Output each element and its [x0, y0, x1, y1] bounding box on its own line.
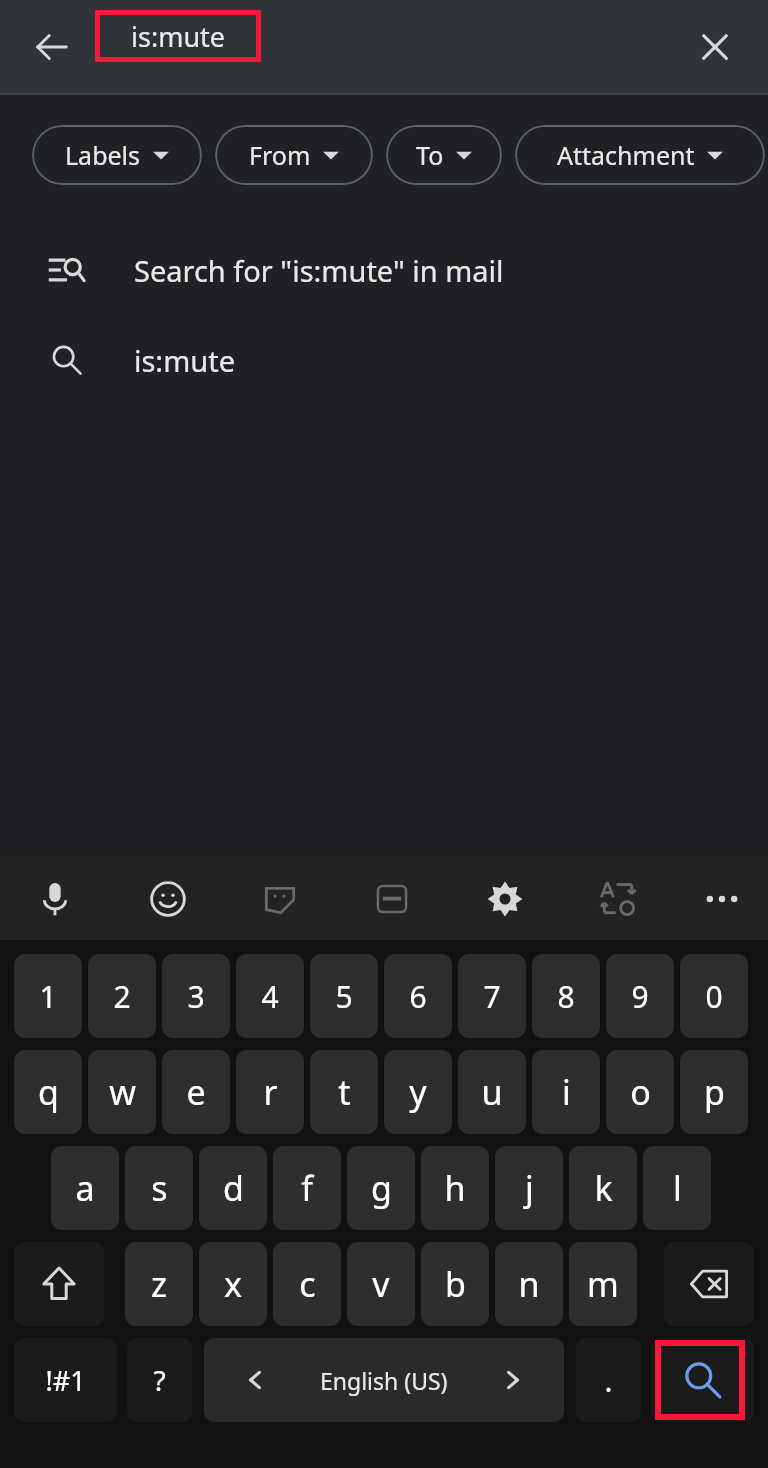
staticText: m	[587, 1261, 619, 1307]
staticText: e	[186, 1069, 206, 1115]
button[interactable]: Stickers	[244, 863, 316, 935]
button[interactable]: q	[14, 1050, 82, 1134]
staticText: z	[151, 1261, 167, 1307]
staticText: Attachment	[557, 138, 695, 172]
button[interactable]: More options	[686, 863, 758, 935]
staticText: u	[481, 1069, 503, 1115]
staticText: 1	[39, 976, 57, 1017]
button[interactable]: v	[347, 1242, 415, 1326]
staticText: q	[38, 1069, 59, 1115]
staticText: d	[223, 1165, 244, 1211]
button[interactable]: o	[606, 1050, 674, 1134]
button[interactable]: GIF	[356, 863, 428, 935]
button[interactable]: k	[569, 1146, 637, 1230]
button[interactable]: Clear search	[675, 7, 755, 87]
staticText: .	[604, 1360, 613, 1401]
staticText: c	[299, 1261, 316, 1307]
button[interactable]: Search	[651, 1338, 754, 1422]
button[interactable]: 0	[680, 954, 748, 1038]
button[interactable]: n	[495, 1242, 563, 1326]
button[interactable]: x	[199, 1242, 267, 1326]
button[interactable]: g	[347, 1146, 415, 1230]
button[interactable]: a	[51, 1146, 119, 1230]
button[interactable]: i	[532, 1050, 600, 1134]
button[interactable]: w	[88, 1050, 156, 1134]
button[interactable]: Attachment	[515, 125, 765, 185]
staticText: 7	[483, 976, 501, 1017]
staticText: 4	[261, 976, 279, 1017]
button[interactable]: e	[162, 1050, 230, 1134]
button[interactable]: To	[386, 125, 502, 185]
staticText: t	[338, 1069, 351, 1115]
staticText: h	[444, 1165, 466, 1211]
button[interactable]: Space, English (US)	[204, 1338, 564, 1422]
button[interactable]: .	[576, 1338, 641, 1422]
staticText: !#1	[45, 1362, 86, 1399]
staticText: n	[518, 1261, 540, 1307]
button[interactable]: l	[643, 1146, 711, 1230]
button[interactable]: Back	[12, 7, 92, 87]
staticText: r	[263, 1069, 278, 1115]
staticText: 5	[335, 976, 353, 1017]
staticText: 3	[187, 976, 205, 1017]
staticText: i	[562, 1069, 571, 1115]
staticText: From	[249, 138, 311, 172]
staticText: v	[372, 1261, 390, 1307]
button[interactable]: Shift	[14, 1242, 104, 1326]
button[interactable]: z	[125, 1242, 193, 1326]
button[interactable]: From	[215, 125, 373, 185]
staticText: ?	[153, 1361, 166, 1399]
staticText: y	[409, 1069, 427, 1115]
button[interactable]: j	[495, 1146, 563, 1230]
staticText: Labels	[65, 138, 141, 172]
button[interactable]: f	[273, 1146, 341, 1230]
button[interactable]: Translate	[582, 863, 654, 935]
button[interactable]: 9	[606, 954, 674, 1038]
staticText: a	[75, 1165, 95, 1211]
staticText: is:mute	[134, 341, 236, 380]
button[interactable]: !#1	[14, 1338, 117, 1422]
staticText: g	[371, 1165, 392, 1211]
button[interactable]: ?	[127, 1338, 192, 1422]
button[interactable]: Labels	[32, 125, 202, 185]
button[interactable]: 7	[458, 954, 526, 1038]
button[interactable]: c	[273, 1242, 341, 1326]
button[interactable]: b	[421, 1242, 489, 1326]
button[interactable]: 2	[88, 954, 156, 1038]
button[interactable]: Backspace	[664, 1242, 754, 1326]
button[interactable]: Voice input	[19, 863, 91, 935]
staticText: 6	[409, 976, 427, 1017]
button[interactable]: 5	[310, 954, 378, 1038]
staticText: w	[109, 1069, 136, 1115]
button[interactable]: 6	[384, 954, 452, 1038]
button[interactable]: t	[310, 1050, 378, 1134]
button[interactable]: Emoji	[132, 863, 204, 935]
button[interactable]: 1	[14, 954, 82, 1038]
button[interactable]: h	[421, 1146, 489, 1230]
staticText: l	[673, 1165, 682, 1211]
staticText: Search for "is:mute" in mail	[134, 251, 504, 290]
button[interactable]: Settings	[469, 863, 541, 935]
button[interactable]: 3	[162, 954, 230, 1038]
button[interactable]: r	[236, 1050, 304, 1134]
staticText: j	[525, 1165, 534, 1211]
button[interactable]: u	[458, 1050, 526, 1134]
staticText: is:mute	[131, 18, 226, 55]
staticText: 9	[631, 976, 649, 1017]
button[interactable]: is:mute	[95, 10, 261, 62]
staticText: English (US)	[320, 1365, 448, 1396]
staticText: To	[416, 138, 444, 172]
button[interactable]: 4	[236, 954, 304, 1038]
button[interactable]: 8	[532, 954, 600, 1038]
staticText: p	[704, 1069, 725, 1115]
button[interactable]: m	[569, 1242, 637, 1326]
button[interactable]: s	[125, 1146, 193, 1230]
staticText: k	[594, 1165, 613, 1211]
staticText: s	[151, 1165, 168, 1211]
button[interactable]: p	[680, 1050, 748, 1134]
button[interactable]: is:mute	[0, 315, 768, 405]
staticText: o	[630, 1069, 651, 1115]
button[interactable]: d	[199, 1146, 267, 1230]
button[interactable]: Search for "is:mute" in mail	[0, 225, 768, 315]
button[interactable]: y	[384, 1050, 452, 1134]
